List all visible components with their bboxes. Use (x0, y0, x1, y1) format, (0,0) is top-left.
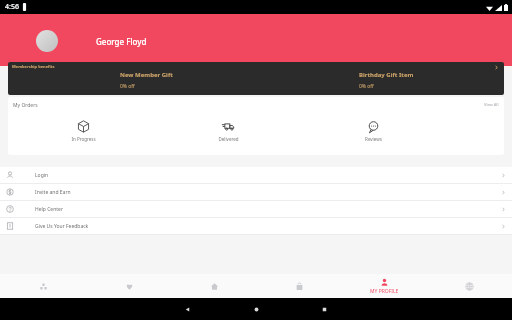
other: Home (253, 306, 260, 313)
staticText: View All (484, 102, 499, 107)
staticText: Membership benefits (12, 64, 55, 69)
button[interactable]: Delivered (193, 119, 263, 143)
button[interactable]: Wishlist (86, 274, 172, 298)
button[interactable]: Bag (257, 274, 342, 298)
button[interactable]: Membership benefits (8, 62, 504, 95)
staticText: 4:56 (5, 2, 19, 12)
button[interactable]: Give Us Your Feedback (0, 218, 512, 234)
button[interactable]: Language (427, 274, 512, 298)
staticText: Reviews (365, 136, 382, 142)
staticText: New Member Gift (120, 71, 173, 79)
staticText: George Floyd (96, 36, 147, 47)
staticText: MY PROFILE (370, 288, 399, 295)
button[interactable]: In Progress (48, 119, 118, 143)
staticText: 0% off (120, 83, 135, 90)
staticText: Help Center (35, 206, 63, 213)
button[interactable]: View All (484, 97, 504, 107)
staticText: In Progress (71, 136, 96, 142)
staticText: Login (35, 172, 49, 179)
button[interactable]: Reviews (338, 119, 408, 143)
button[interactable]: My Profile (342, 274, 427, 298)
other: Back (184, 306, 191, 313)
button[interactable]: Home (172, 274, 257, 298)
other: Recents (321, 306, 328, 313)
staticText: 0% off (359, 83, 374, 90)
button[interactable]: Login (0, 167, 512, 183)
staticText: Give Us Your Feedback (35, 223, 89, 230)
staticText: Invite and Earn (35, 189, 71, 196)
staticText: Delivered (218, 136, 239, 142)
button[interactable]: Help Center (0, 201, 512, 217)
staticText: Birthday Gift Item (359, 71, 414, 79)
button[interactable]: Categories (0, 274, 86, 298)
staticText: My Orders (13, 102, 38, 109)
button[interactable]: Invite and Earn (0, 184, 512, 200)
button[interactable]: George Floyd (0, 14, 512, 66)
